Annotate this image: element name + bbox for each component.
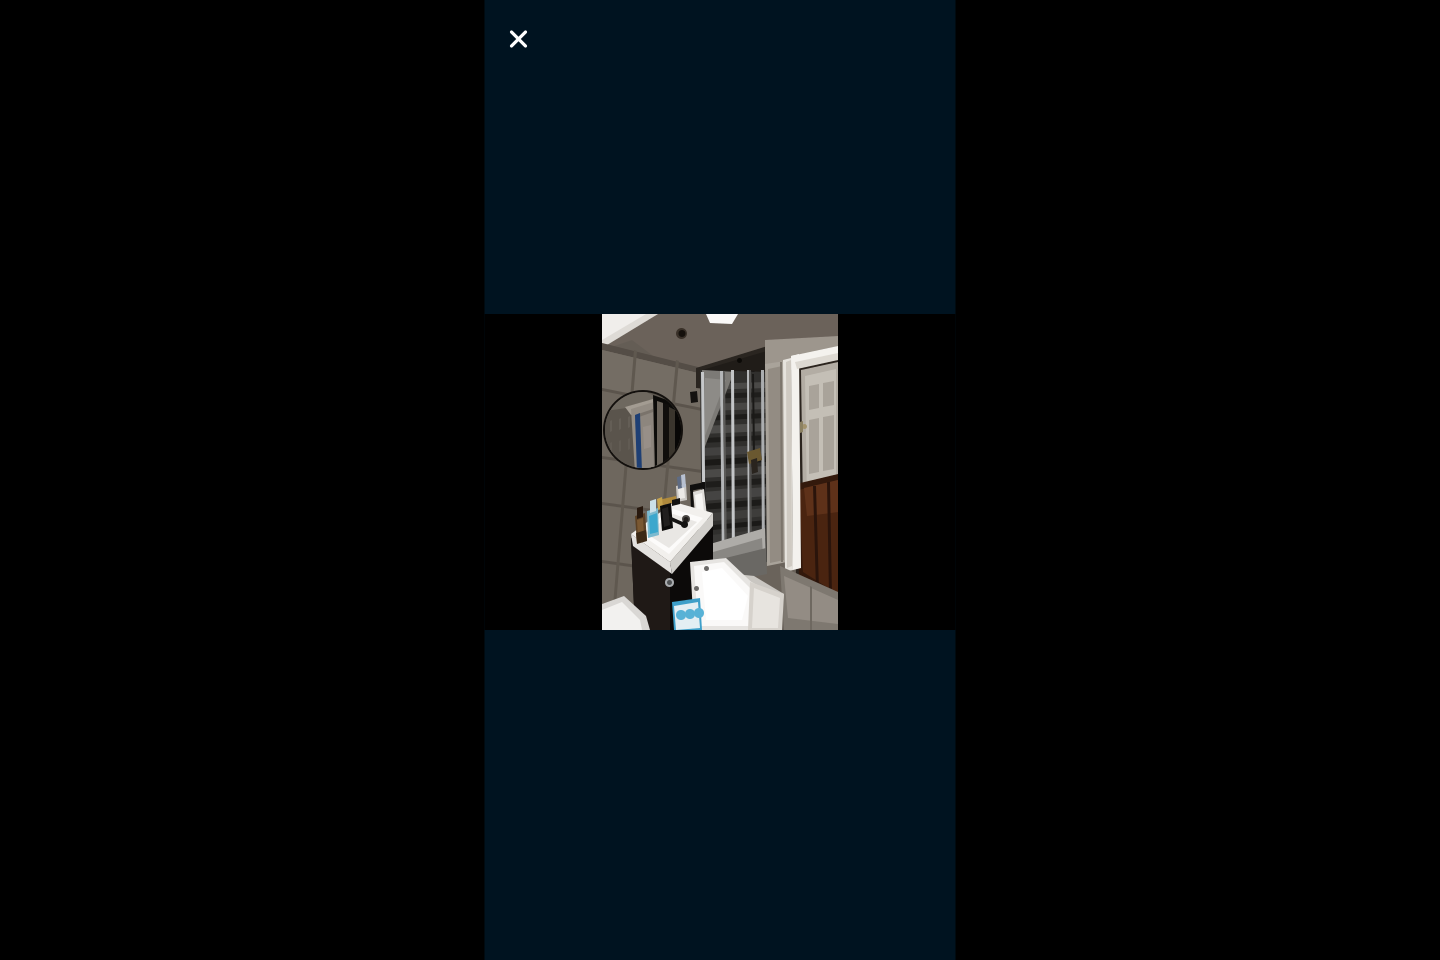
button[interactable]: Close (496, 17, 540, 61)
